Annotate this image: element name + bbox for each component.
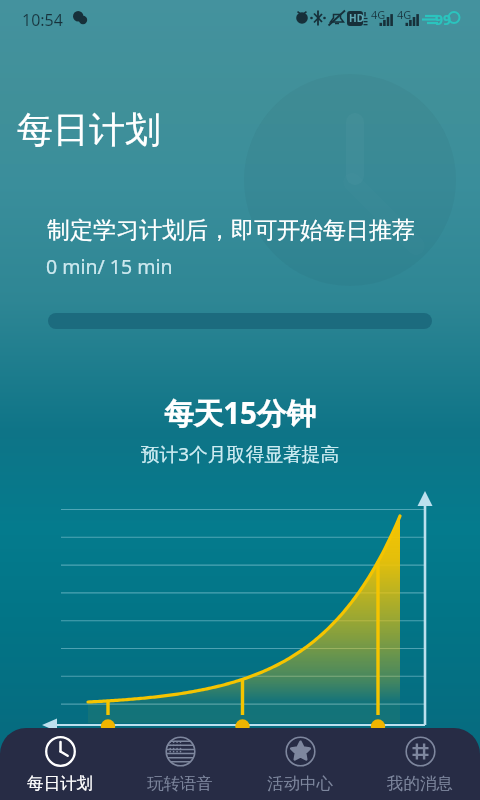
- staticText: 每日计划: [27, 773, 93, 793]
- staticText: 0 min/ 15 min: [46, 253, 173, 280]
- staticText: 我的消息: [387, 773, 453, 793]
- other: My messages: [405, 736, 436, 767]
- staticText: 4G: [397, 7, 412, 22]
- button[interactable]: My messages: [360, 728, 480, 800]
- staticText: 99: [435, 10, 452, 29]
- button[interactable]: Voice practice: [120, 728, 240, 800]
- staticText: HD: [349, 11, 364, 25]
- staticText: 预计3个月取得显著提高: [0, 441, 480, 467]
- staticText: 每日计划: [17, 107, 161, 152]
- other: Activity center: [285, 736, 316, 767]
- staticText: 玩转语音: [147, 773, 213, 793]
- staticText: 4G: [371, 7, 386, 22]
- button[interactable]: Activity center: [240, 728, 360, 800]
- button[interactable]: Daily plan: [0, 728, 120, 800]
- staticText: 10:54: [22, 9, 63, 31]
- other: Daily plan: [45, 736, 76, 767]
- staticText: 每天15分钟: [0, 392, 480, 432]
- staticText: 制定学习计划后，即可开始每日推荐: [47, 216, 415, 245]
- other: Voice practice: [165, 736, 196, 767]
- staticText: 活动中心: [267, 773, 333, 793]
